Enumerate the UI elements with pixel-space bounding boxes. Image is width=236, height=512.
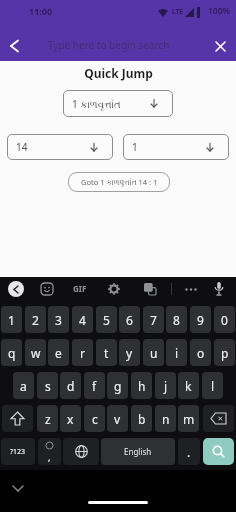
button[interactable]: , [38, 438, 61, 465]
staticText: 5 [103, 312, 110, 328]
button[interactable]: b [131, 405, 152, 432]
staticText: s [45, 378, 51, 394]
staticText: k [185, 378, 192, 394]
button[interactable]: 2 [25, 306, 46, 333]
staticText: Goto 1 કાળવૃત્તાંત 14 : 1 [81, 177, 158, 187]
staticText: n [162, 411, 170, 427]
button[interactable] [212, 280, 226, 297]
button[interactable]: m [178, 405, 199, 432]
staticText: f [92, 378, 97, 394]
staticText: v [114, 411, 121, 427]
staticText: 7 [150, 312, 157, 328]
button[interactable]: e [48, 339, 69, 366]
button[interactable]: a [13, 372, 34, 399]
button[interactable]: s [37, 372, 58, 399]
staticText: . [187, 444, 191, 460]
button[interactable]: z [37, 405, 58, 432]
button[interactable]: g [107, 372, 128, 399]
button[interactable]: x [60, 405, 81, 432]
button[interactable]: 6 [119, 306, 140, 333]
button[interactable]: d [60, 372, 81, 399]
staticText: Type here to begin search [48, 38, 198, 52]
button[interactable]: u [143, 339, 164, 366]
staticText: 11:00 [29, 5, 53, 17]
staticText: w [31, 345, 41, 361]
button[interactable] [2, 405, 33, 432]
button[interactable] [63, 438, 99, 465]
staticText: o [197, 345, 205, 361]
staticText: 1 [132, 140, 138, 154]
button[interactable]: ?123 [1, 438, 35, 465]
staticText: y [126, 345, 133, 361]
button[interactable]: GIF [70, 282, 90, 295]
button[interactable]: k [178, 372, 199, 399]
button[interactable] [203, 405, 234, 432]
staticText: z [45, 411, 51, 427]
button[interactable]: v [107, 405, 128, 432]
staticText: ?123 [10, 447, 26, 457]
button[interactable]: j [155, 372, 176, 399]
staticText: u [150, 345, 158, 361]
staticText: g [114, 378, 122, 394]
button[interactable]: 5 [96, 306, 117, 333]
staticText: English [124, 446, 152, 457]
staticText: 1 કાળવૃત્તાંત [72, 97, 121, 111]
button[interactable]: 0 [214, 306, 235, 333]
button[interactable]: i [166, 339, 187, 366]
button[interactable]: f [84, 372, 105, 399]
button[interactable] [2, 34, 26, 58]
staticText: m [183, 411, 195, 427]
button[interactable]: . [178, 438, 200, 465]
button[interactable] [208, 34, 232, 58]
button[interactable]: c [84, 405, 105, 432]
staticText: 0 [221, 312, 228, 328]
staticText: 9 [197, 312, 204, 328]
button[interactable]: r [72, 339, 93, 366]
button[interactable]: 14 [7, 134, 113, 160]
button[interactable] [40, 282, 54, 296]
staticText: h [138, 378, 146, 394]
staticText: 4 [79, 312, 86, 328]
button[interactable]: p [214, 339, 235, 366]
button[interactable]: q [1, 339, 22, 366]
button[interactable]: 1 [123, 134, 229, 160]
button[interactable]: Goto 1 કાળવૃત્તાંત 14 : 1 [68, 172, 170, 192]
staticText: i [175, 345, 179, 361]
button[interactable] [107, 282, 121, 296]
button[interactable]: l [202, 372, 223, 399]
button[interactable]: h [131, 372, 152, 399]
staticText: 1 [8, 312, 15, 328]
staticText: l [211, 378, 215, 394]
button[interactable]: English [101, 438, 175, 465]
staticText: 2 [32, 312, 39, 328]
button[interactable]: w [25, 339, 46, 366]
staticText: 14 [16, 140, 28, 154]
staticText: , [48, 451, 51, 463]
button[interactable] [8, 281, 24, 297]
button[interactable]: 1 [1, 306, 22, 333]
button[interactable]: 8 [166, 306, 187, 333]
staticText: Quick Jump [84, 65, 153, 81]
staticText: t [104, 345, 109, 361]
button[interactable] [182, 282, 200, 296]
button[interactable]: 1 કાળવૃત્તાંત [63, 90, 173, 117]
staticText: d [67, 378, 75, 394]
button[interactable]: 3 [48, 306, 69, 333]
staticText: GIF [73, 283, 87, 294]
staticText: a [20, 378, 27, 394]
staticText: b [138, 411, 146, 427]
button[interactable]: 4 [72, 306, 93, 333]
button[interactable]: 7 [143, 306, 164, 333]
staticText: LTE [172, 7, 183, 16]
staticText: x [67, 411, 74, 427]
staticText: q [8, 345, 16, 361]
button[interactable]: 9 [190, 306, 211, 333]
staticText: p [221, 345, 229, 361]
button[interactable] [143, 282, 157, 296]
button[interactable] [203, 438, 234, 465]
button[interactable]: t [96, 339, 117, 366]
button[interactable]: n [155, 405, 176, 432]
button[interactable]: y [119, 339, 140, 366]
staticText: e [55, 345, 62, 361]
button[interactable]: o [190, 339, 211, 366]
